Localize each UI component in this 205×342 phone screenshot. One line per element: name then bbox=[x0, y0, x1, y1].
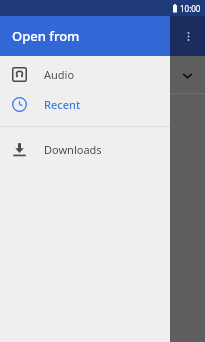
button[interactable]: Downloads bbox=[0, 134, 170, 164]
staticText: Audio bbox=[44, 67, 75, 82]
button[interactable]: Expand bbox=[175, 63, 199, 87]
button[interactable]: More options bbox=[176, 24, 200, 48]
staticText: Open from bbox=[12, 27, 80, 45]
staticText: 10:00 bbox=[180, 3, 201, 14]
button[interactable]: Recent bbox=[0, 89, 170, 119]
button[interactable]: Audio bbox=[0, 59, 170, 89]
staticText: Downloads bbox=[44, 142, 102, 157]
staticText: Recent bbox=[44, 97, 81, 112]
